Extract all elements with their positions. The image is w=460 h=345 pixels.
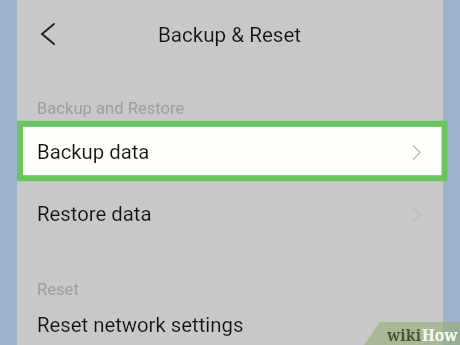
staticText: Backup data (37, 140, 150, 164)
staticText: wiki (387, 324, 422, 345)
staticText: Restore data (37, 202, 152, 226)
staticText: How (422, 324, 458, 345)
staticText: Reset (37, 280, 79, 299)
staticText: Reset network settings (37, 313, 244, 337)
button[interactable]: Reset network settings (17, 300, 443, 345)
button[interactable]: Restore data (17, 189, 443, 238)
staticText: Backup and Restore (37, 99, 185, 118)
button[interactable]: Backup data (17, 127, 443, 176)
button[interactable]: Back (24, 10, 72, 58)
staticText: Backup & Reset (158, 23, 302, 47)
